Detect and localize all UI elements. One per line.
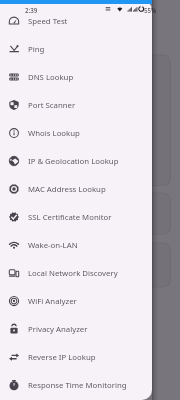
button[interactable]: Local Network Discovery	[0, 259, 152, 287]
staticText: Response Time Monitoring	[28, 380, 127, 391]
button[interactable]: Response Time Monitoring	[0, 371, 152, 399]
button[interactable]: Speed Test	[0, 7, 152, 35]
staticText: Privacy Analyzer	[28, 324, 88, 335]
staticText: Port Scanner	[28, 100, 76, 111]
staticText: Local Network Discovery	[28, 268, 118, 279]
button[interactable]: MAC Address Lookup	[0, 175, 152, 203]
staticText: Wake-on-LAN	[28, 240, 78, 251]
button[interactable]: Wake-on-LAN	[0, 231, 152, 259]
button[interactable]: SSL Certificate Monitor	[0, 203, 152, 231]
button[interactable]: IP & Geolocation Lookup	[0, 147, 152, 175]
button[interactable]: DNS Lookup	[0, 63, 152, 91]
button[interactable]: WiFi Analyzer	[0, 287, 152, 315]
staticText: IP & Geolocation Lookup	[28, 156, 119, 167]
staticText: Reverse IP Lookup	[28, 352, 96, 363]
staticText: Whois Lookup	[28, 128, 80, 139]
button[interactable]: Reverse IP Lookup	[0, 343, 152, 371]
staticText: 2:39	[25, 6, 38, 14]
staticText: SSL Certificate Monitor	[28, 212, 112, 223]
staticText: 55%	[144, 6, 157, 14]
staticText: Ping	[28, 44, 45, 55]
staticText: DNS Lookup	[28, 72, 74, 83]
staticText: WiFi Analyzer	[28, 296, 77, 307]
button[interactable]: Whois Lookup	[0, 119, 152, 147]
button[interactable]: Ping	[0, 35, 152, 63]
button[interactable]: Port Scanner	[0, 91, 152, 119]
staticText: MAC Address Lookup	[28, 184, 106, 195]
staticText: Speed Test	[28, 16, 68, 27]
button[interactable]: Privacy Analyzer	[0, 315, 152, 343]
